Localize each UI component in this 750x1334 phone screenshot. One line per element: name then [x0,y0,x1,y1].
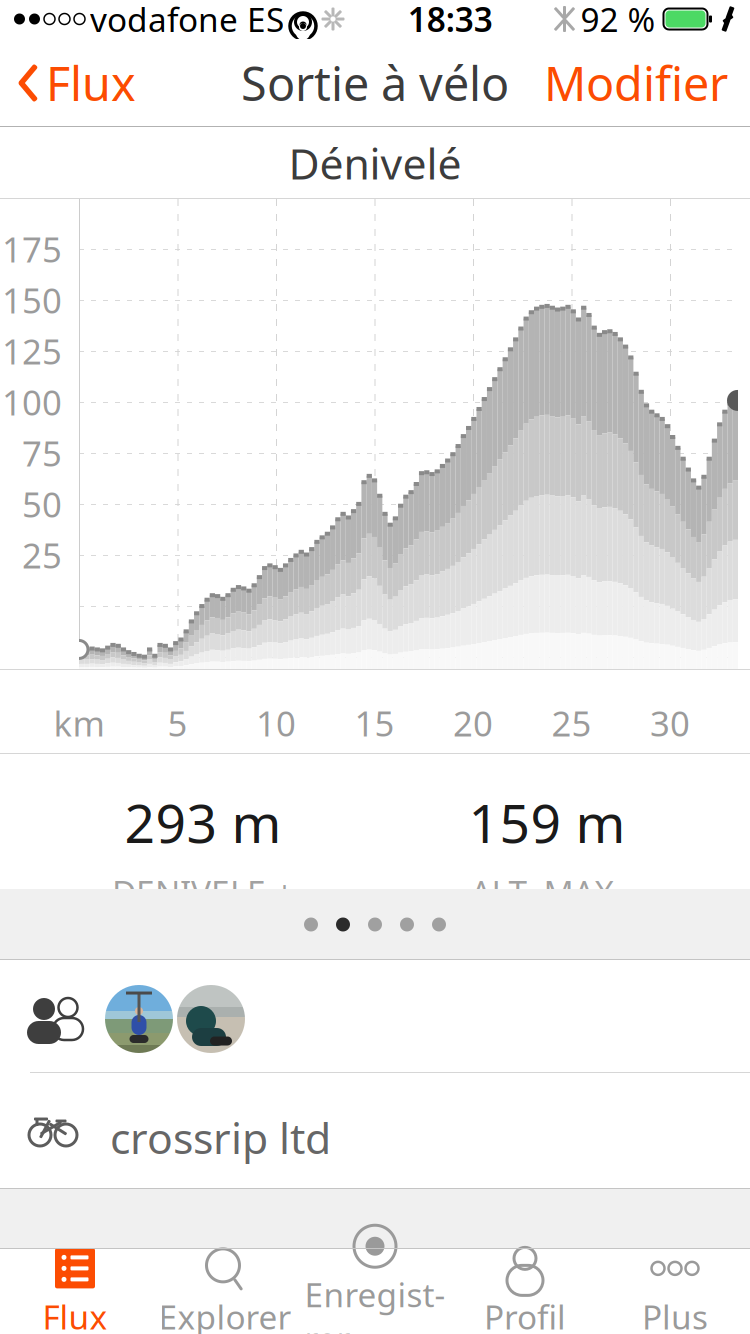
staticText: Flux [46,52,136,114]
staticText: 15 [354,700,394,746]
button[interactable]: Profil [450,1248,600,1334]
staticText: ALT. MAX. [470,870,623,914]
staticText: 125 [2,328,62,374]
staticText: Sortie à vélo [241,52,509,114]
staticText: 5 [167,700,187,746]
button[interactable]: Flux [0,39,154,127]
staticText: Enregistrer [304,1272,445,1334]
staticText: 175 [2,226,62,272]
button[interactable]: Enregistrer [300,1248,450,1334]
staticText: 100 [2,379,62,425]
staticText: 30 [650,700,690,746]
staticText: 293 m [124,787,281,858]
staticText: 18:33 [408,0,493,41]
staticText: 75 [22,430,62,476]
staticText: Explorer [158,1294,291,1334]
staticText: DENIVELE + [112,870,294,914]
button[interactable]: Plus [600,1248,750,1334]
staticText: 159 m [468,787,625,858]
staticText: crossrip ltd [110,1109,331,1166]
staticText: Flux [42,1294,107,1334]
staticText: Dénivelé [288,135,461,191]
button[interactable]: crossrip ltd [0,1073,750,1188]
staticText: km [53,700,104,746]
button[interactable]: Modifier [522,39,750,127]
staticText: Profil [484,1294,566,1334]
staticText: Modifier [544,52,728,114]
staticText: 150 [2,277,62,323]
staticText: 50 [22,481,62,527]
button[interactable] [0,960,750,1073]
staticText: 20 [453,700,493,746]
staticText: Plus [642,1294,708,1334]
staticText: 25 [551,700,591,746]
staticText: 25 [22,532,62,578]
staticText: 92 % [580,0,655,41]
button[interactable]: Flux [0,1248,150,1334]
staticText: vodafone ES [90,0,284,41]
button[interactable]: Explorer [150,1248,300,1334]
staticText: 10 [256,700,296,746]
